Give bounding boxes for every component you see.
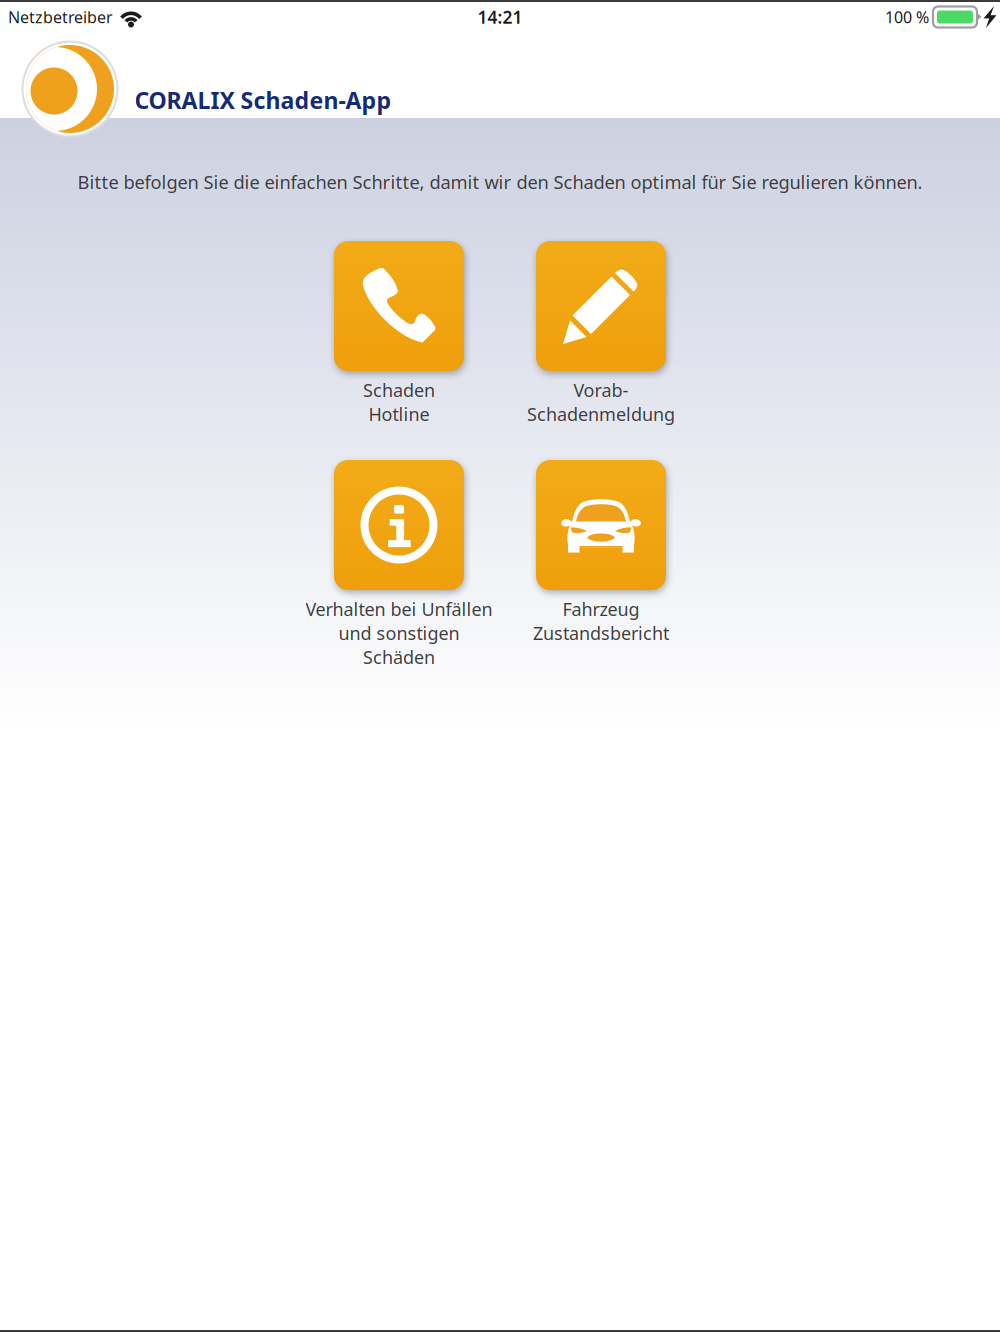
staticText: 14:21	[477, 5, 522, 29]
staticText: CORALIX Schaden-App	[134, 84, 391, 116]
button[interactable]: Vorab-	[501, 241, 701, 426]
staticText: Zustandsbericht	[533, 621, 669, 645]
button[interactable]: Verhalten bei Unfällen	[299, 460, 499, 669]
button[interactable]: Fahrzeug	[501, 460, 701, 645]
button[interactable]: Schaden	[299, 241, 499, 426]
staticText: Schäden	[363, 645, 435, 669]
staticText: Bitte befolgen Sie die einfachen Schritt…	[77, 170, 922, 194]
staticText: Verhalten bei Unfällen	[305, 597, 492, 621]
staticText: Netzbetreiber	[8, 6, 113, 28]
staticText: Schaden	[363, 378, 435, 402]
staticText: Fahrzeug	[562, 597, 639, 621]
staticText: Vorab-	[573, 378, 628, 402]
staticText: 100 %	[885, 6, 929, 28]
staticText: Schadenmeldung	[527, 402, 675, 426]
staticText: und sonstigen	[338, 621, 459, 645]
staticText: Hotline	[368, 402, 429, 426]
